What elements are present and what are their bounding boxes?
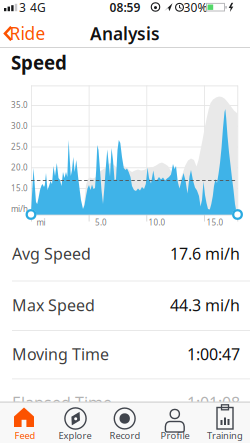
staticText: 1:00:47 [187, 343, 240, 365]
staticText: 4G [30, 0, 46, 15]
staticText: 15.0 [206, 217, 223, 228]
button[interactable]: Training [200, 402, 250, 443]
button[interactable]: Record [100, 402, 150, 443]
staticText: Feed [14, 429, 35, 442]
staticText: 10.0 [148, 217, 165, 228]
button[interactable]: Explore [50, 402, 100, 443]
button[interactable]: Feed [0, 402, 50, 443]
staticText: mi [36, 217, 45, 228]
staticText: 3 [19, 0, 26, 15]
staticText: Training [207, 429, 243, 442]
staticText: mi/h [11, 203, 28, 214]
staticText: 08:59 [109, 0, 140, 15]
staticText: 30% [183, 0, 207, 15]
staticText: 30.0 [11, 120, 28, 131]
staticText: Moving Time [12, 343, 109, 365]
staticText: Elapsed Time [12, 392, 112, 413]
staticText: Profile [160, 429, 189, 442]
staticText: Record [109, 429, 140, 442]
staticText: 35.0 [11, 100, 28, 110]
staticText: 17.6 mi/h [170, 243, 240, 264]
staticText: Max Speed [12, 294, 95, 316]
staticText: Analysis [90, 22, 160, 45]
staticText: 25.0 [11, 141, 28, 152]
staticText: Speed [11, 50, 67, 75]
staticText: Explore [58, 429, 91, 442]
button[interactable]: Profile [150, 402, 200, 443]
button[interactable]: Back [0, 0, 48, 28]
staticText: 1:01:08 [187, 392, 240, 413]
staticText: 5.0 [95, 217, 107, 228]
staticText: 15.0 [11, 183, 28, 193]
staticText: 20.0 [11, 162, 28, 173]
staticText: Avg Speed [12, 243, 91, 264]
staticText: 44.3 mi/h [170, 294, 240, 316]
staticText: Ride [9, 22, 45, 45]
